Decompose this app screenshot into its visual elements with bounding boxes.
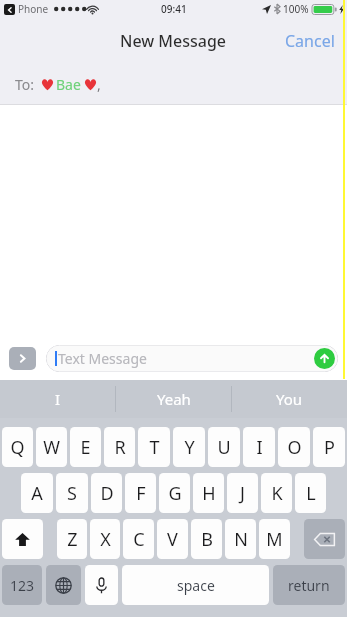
button[interactable]: M: [259, 519, 290, 559]
button[interactable]: return: [273, 565, 345, 605]
staticText: R: [114, 435, 126, 460]
button[interactable]: K: [261, 473, 292, 513]
button[interactable]: 123: [2, 565, 42, 605]
button[interactable]: S: [56, 473, 88, 513]
button[interactable]: O: [278, 427, 310, 467]
staticText: 09:41: [161, 2, 187, 16]
button[interactable]: G: [159, 473, 190, 513]
staticText: 123: [10, 576, 35, 595]
staticText: Yeah: [157, 389, 191, 409]
staticText: X: [100, 527, 111, 552]
staticText: 100%: [283, 2, 309, 16]
staticText: You: [276, 389, 303, 409]
button[interactable]: L: [295, 473, 326, 513]
button[interactable]: Send: [314, 348, 335, 369]
button[interactable]: space: [122, 565, 269, 605]
button[interactable]: X: [90, 519, 120, 559]
staticText: F: [136, 481, 146, 506]
staticText: Q: [10, 435, 25, 460]
button[interactable]: A: [21, 473, 53, 513]
button[interactable]: I: [243, 427, 275, 467]
button[interactable]: More apps: [9, 347, 36, 370]
button[interactable]: Delete: [304, 519, 345, 559]
button[interactable]: D: [91, 473, 122, 513]
staticText: New Message: [120, 30, 227, 52]
staticText: H: [202, 481, 216, 506]
staticText: I: [55, 389, 61, 409]
staticText: V: [167, 527, 178, 552]
staticText: space: [177, 576, 215, 595]
staticText: J: [240, 481, 245, 506]
staticText: E: [80, 435, 91, 460]
button[interactable]: V: [157, 519, 188, 559]
staticText: W: [43, 435, 60, 460]
staticText: return: [288, 576, 330, 595]
staticText: I: [256, 435, 263, 460]
staticText: N: [234, 527, 248, 552]
staticText: To:: [15, 75, 35, 94]
staticText: Phone: [18, 2, 49, 16]
button[interactable]: You: [232, 380, 347, 418]
staticText: G: [168, 481, 182, 506]
staticText: T: [149, 435, 160, 460]
staticText: Z: [67, 527, 78, 552]
button[interactable]: J: [227, 473, 258, 513]
button[interactable]: Yeah: [116, 380, 231, 418]
staticText: Text Message: [58, 349, 147, 368]
staticText: K: [271, 481, 283, 506]
button[interactable]: To:: [0, 64, 347, 105]
button[interactable]: Shift: [2, 519, 43, 559]
button[interactable]: Z: [57, 519, 87, 559]
button[interactable]: H: [193, 473, 224, 513]
button[interactable]: Text Message: [46, 345, 338, 372]
staticText: C: [133, 527, 145, 552]
button[interactable]: I: [0, 380, 115, 418]
staticText: D: [100, 481, 114, 506]
button[interactable]: Next keyboard: [46, 565, 81, 605]
staticText: O: [287, 435, 302, 460]
staticText: U: [217, 435, 231, 460]
staticText: Y: [184, 435, 195, 460]
staticText: ,: [97, 75, 101, 94]
button[interactable]: B: [191, 519, 222, 559]
staticText: B: [201, 527, 213, 552]
staticText: Bae: [56, 75, 81, 94]
button[interactable]: T: [138, 427, 170, 467]
button[interactable]: W: [36, 427, 67, 467]
button[interactable]: C: [123, 519, 154, 559]
staticText: M: [266, 527, 283, 552]
button[interactable]: P: [313, 427, 345, 467]
staticText: Cancel: [285, 30, 335, 52]
button[interactable]: Cancel: [273, 22, 347, 60]
button[interactable]: E: [70, 427, 101, 467]
staticText: L: [306, 481, 316, 506]
button[interactable]: Dictation: [85, 565, 118, 605]
button[interactable]: Q: [2, 427, 33, 467]
staticText: A: [31, 481, 43, 506]
button[interactable]: Y: [173, 427, 205, 467]
staticText: P: [324, 435, 335, 460]
staticText: S: [67, 481, 77, 506]
button[interactable]: F: [125, 473, 156, 513]
button[interactable]: R: [104, 427, 135, 467]
button[interactable]: N: [225, 519, 256, 559]
button[interactable]: U: [208, 427, 240, 467]
